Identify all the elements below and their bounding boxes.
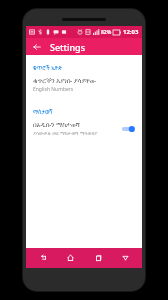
button[interactable]: Home xyxy=(59,248,81,268)
staticText: ቁጥሮችን እያነሱ ያሳያቸው xyxy=(33,76,97,85)
staticText: 82% xyxy=(101,29,112,36)
staticText: ያሳውቃሉ ወደ ማስታወሻ ማሳወቂያ xyxy=(33,130,98,137)
button[interactable]: በአዲሱን ማስታወሻ xyxy=(26,117,142,141)
staticText: ማስታወሻ xyxy=(33,108,53,115)
button[interactable]: Recents xyxy=(87,248,109,268)
staticText: በአዲሱን ማስታወሻ xyxy=(33,120,80,129)
button[interactable]: Toggle notification xyxy=(120,123,136,135)
button[interactable]: Hide keyboard xyxy=(114,248,136,268)
staticText: ቁጥሮች ኢዮጵ xyxy=(33,64,62,71)
button[interactable]: ቁጥሮችን እያነሱ ያሳያቸው xyxy=(26,73,142,97)
button[interactable]: Back xyxy=(30,40,44,54)
staticText: English Numbers xyxy=(33,86,74,93)
button[interactable]: Back xyxy=(32,248,54,268)
staticText: 12:03 xyxy=(123,28,139,36)
staticText: Settings xyxy=(50,41,86,53)
